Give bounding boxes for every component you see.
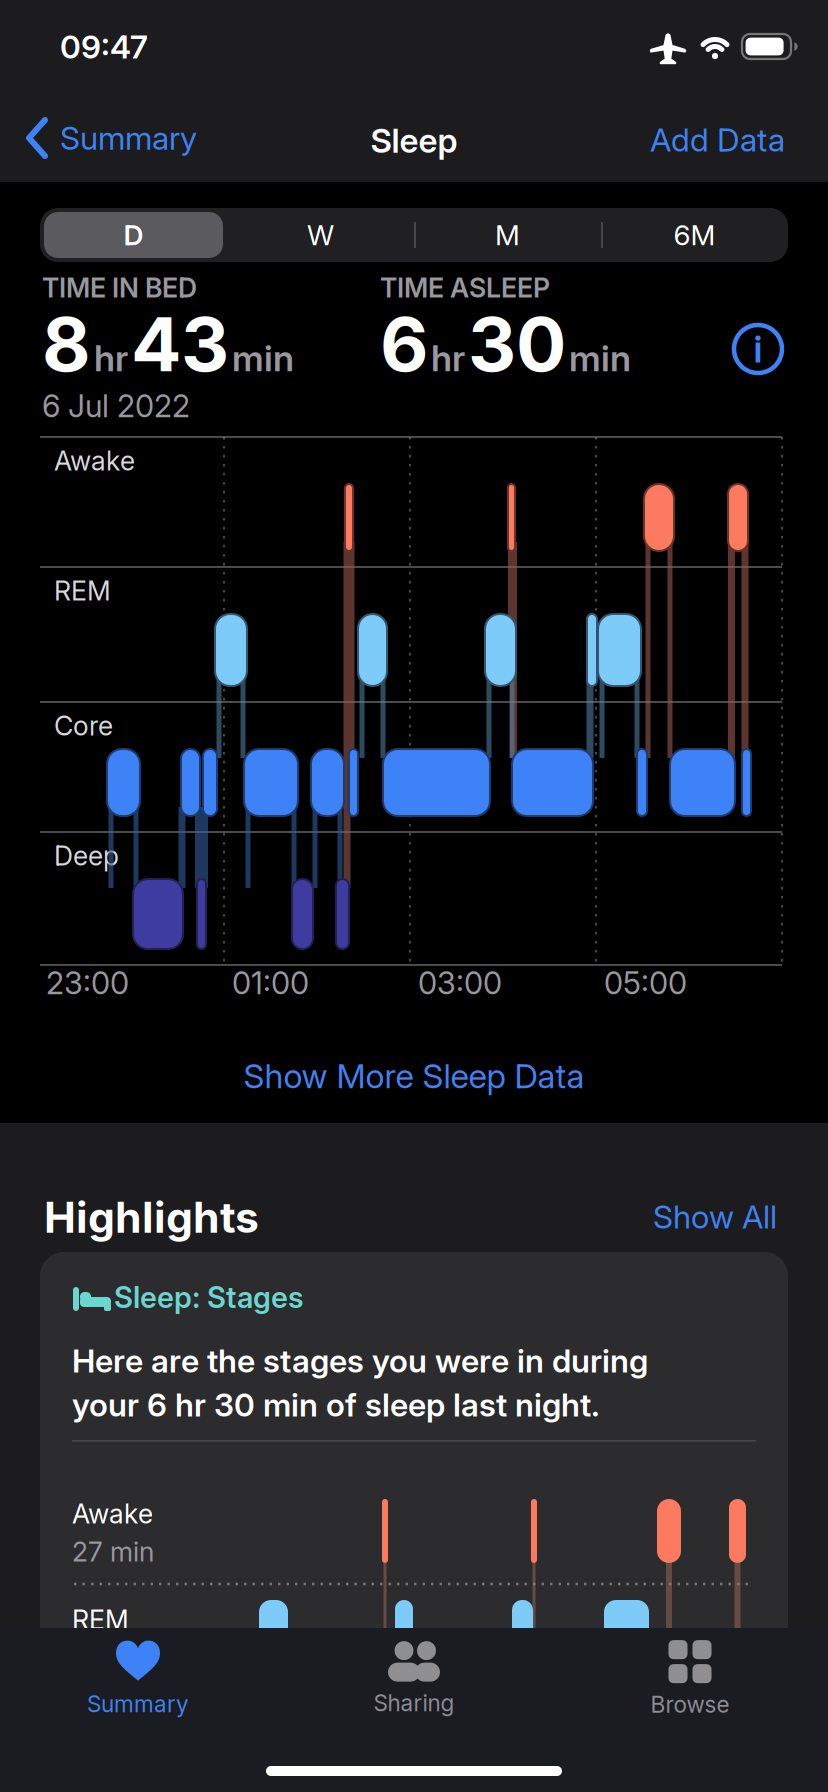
staticText: Summary (87, 1691, 189, 1717)
button[interactable]: Add Data (650, 121, 785, 159)
staticText: Here are the stages you were in during (72, 1342, 648, 1380)
staticText: Sleep: Stages (114, 1280, 304, 1315)
staticText: Deep (54, 840, 119, 871)
staticText: Browse (650, 1691, 729, 1718)
staticText: 30 (468, 300, 566, 388)
staticText: hr (431, 337, 465, 379)
staticText: REM (72, 1604, 129, 1635)
staticText: Highlights (44, 1192, 259, 1242)
staticText: 03:00 (418, 965, 502, 1001)
staticText: 8 (42, 300, 91, 388)
staticText: Sleep (370, 121, 457, 160)
staticText: min (569, 337, 631, 379)
staticText: 23:00 (46, 965, 129, 1001)
staticText: Add Data (650, 121, 785, 159)
staticText: 43 (131, 300, 229, 388)
button[interactable]: Show More Sleep Data (0, 1046, 828, 1106)
staticText: 6 Jul 2022 (42, 388, 190, 424)
staticText: TIME ASLEEP (380, 272, 550, 303)
staticText: hr (94, 337, 128, 379)
staticText: 27 min (72, 1536, 154, 1567)
staticText: D (123, 218, 143, 251)
staticText: 05:00 (604, 965, 687, 1001)
staticText: Core (54, 710, 113, 741)
staticText: 01:00 (232, 965, 309, 1001)
button[interactable]: Show All (653, 1198, 777, 1236)
staticText: Show All (653, 1198, 777, 1236)
button[interactable]: D (40, 208, 227, 262)
staticText: 6M (673, 218, 715, 251)
staticText: Awake (72, 1498, 153, 1529)
button[interactable]: Summary (0, 1631, 276, 1727)
button[interactable]: About Sleep (732, 323, 784, 375)
staticText: Show More Sleep Data (243, 1056, 584, 1096)
button[interactable]: Sleep: Stages (40, 1252, 788, 1792)
staticText: 6 (380, 300, 428, 388)
staticText: W (307, 218, 334, 251)
button[interactable]: Sharing (276, 1631, 552, 1727)
staticText: Sharing (373, 1690, 454, 1716)
button[interactable]: Back (26, 118, 197, 158)
staticText: TIME IN BED (42, 272, 197, 303)
staticText: M (495, 218, 520, 251)
staticText: your 6 hr 30 min of sleep last night. (72, 1386, 600, 1424)
staticText: i (753, 327, 762, 371)
staticText: REM (54, 575, 111, 606)
button[interactable]: 6M (601, 208, 788, 262)
staticText: min (232, 337, 294, 379)
staticText: Summary (60, 119, 197, 157)
button[interactable]: M (414, 208, 601, 262)
button[interactable]: Browse (552, 1631, 828, 1727)
staticText: Awake (54, 445, 135, 476)
button[interactable]: W (227, 208, 414, 262)
staticText: 09:47 (60, 28, 148, 66)
